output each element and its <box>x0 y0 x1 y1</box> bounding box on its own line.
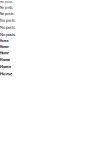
staticText: Home <box>0 64 11 69</box>
staticText: No posts. <box>0 32 16 37</box>
staticText: Home <box>0 57 10 62</box>
staticText: Home <box>0 51 9 55</box>
staticText: No posts. <box>0 6 13 10</box>
staticText: No posts. <box>0 25 16 30</box>
staticText: Home <box>0 71 12 76</box>
staticText: No posts. <box>0 12 15 16</box>
staticText: Home <box>0 39 9 43</box>
staticText: Home <box>0 45 9 49</box>
staticText: No posts. <box>0 18 16 23</box>
staticText: No posts. <box>0 0 13 4</box>
